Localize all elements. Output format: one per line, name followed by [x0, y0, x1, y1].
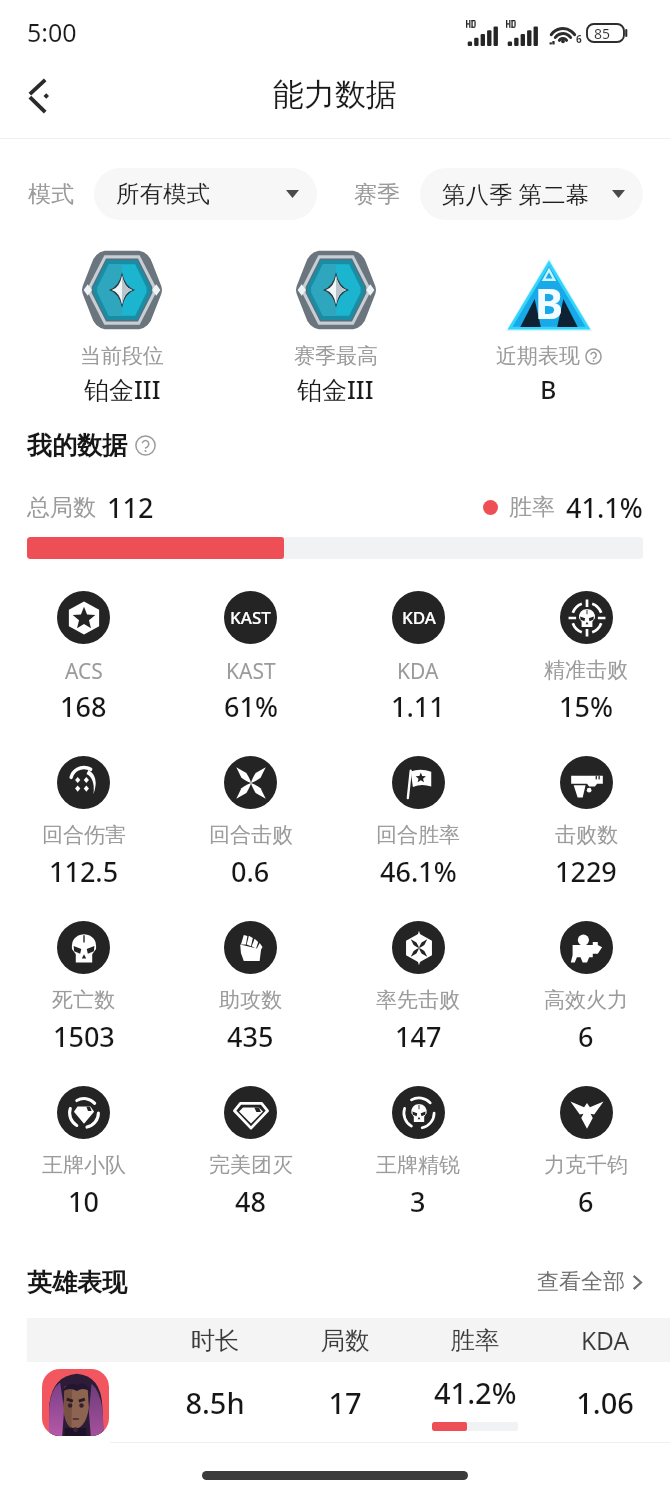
staticText: 6	[578, 1183, 594, 1220]
button[interactable]: 助攻数	[167, 921, 334, 1086]
button[interactable]: Back	[12, 67, 70, 125]
staticText: 112	[107, 489, 154, 526]
button[interactable]: 王牌精锐	[334, 1086, 502, 1251]
staticText: 局数	[280, 1325, 410, 1356]
staticText: 能力数据	[273, 75, 397, 114]
button[interactable]: KAST	[167, 591, 334, 756]
staticText: 10	[68, 1183, 99, 1220]
button[interactable]: KDA	[334, 591, 502, 756]
button[interactable]: 回合伤害	[0, 756, 167, 921]
staticText: 112.5	[49, 853, 119, 890]
button[interactable]: 高效火力	[502, 921, 670, 1086]
staticText: 铂金III	[84, 372, 161, 406]
staticText: 41.2%	[434, 1373, 517, 1412]
staticText: 铂金III	[297, 372, 374, 406]
staticText: 6	[576, 32, 582, 46]
button[interactable]: 精准击败	[502, 591, 670, 756]
staticText: 胜率	[509, 493, 555, 522]
button[interactable]: 回合胜率	[334, 756, 502, 921]
staticText: B	[540, 372, 557, 406]
button[interactable]: 回合击败	[167, 756, 334, 921]
staticText: 我的数据	[27, 430, 127, 461]
staticText: 61%	[224, 688, 278, 725]
staticText: 完美团灭	[209, 1152, 293, 1178]
staticText: 胜率	[410, 1325, 540, 1356]
staticText: KDA	[397, 657, 439, 686]
staticText: 3	[410, 1183, 426, 1220]
staticText: 回合伤害	[42, 822, 126, 848]
staticText: KAST	[230, 606, 271, 629]
staticText: 435	[227, 1018, 274, 1055]
staticText: 所有模式	[116, 179, 210, 209]
button[interactable]: 击败数	[502, 756, 670, 921]
staticText: 46.1%	[380, 853, 457, 890]
button[interactable]: 8.5h	[0, 1362, 670, 1442]
button[interactable]: 力克千钧	[502, 1086, 670, 1251]
staticText: 模式	[28, 180, 74, 209]
staticText: 6	[578, 1018, 594, 1055]
staticText: 时长	[150, 1325, 280, 1356]
staticText: 高效火力	[544, 987, 628, 1013]
staticText: 1.11	[391, 688, 445, 725]
staticText: KDA	[540, 1324, 670, 1357]
staticText: 击败数	[555, 822, 618, 848]
button[interactable]: ACS	[0, 591, 167, 756]
button[interactable]: 死亡数	[0, 921, 167, 1086]
button[interactable]: 第八季 第二幕	[420, 168, 643, 220]
button[interactable]: 当前段位	[15, 236, 229, 408]
staticText: 1.06	[540, 1383, 670, 1422]
staticText: 1229	[555, 853, 617, 890]
staticText: 率先击败	[376, 987, 460, 1013]
staticText: 助攻数	[219, 987, 282, 1013]
staticText: 当前段位	[80, 343, 164, 369]
staticText: 168	[60, 688, 107, 725]
staticText: 17	[280, 1383, 410, 1422]
staticText: 1503	[53, 1018, 115, 1055]
staticText: 5:00	[27, 15, 77, 49]
staticText: 查看全部	[537, 1268, 625, 1296]
staticText: 回合胜率	[376, 822, 460, 848]
staticText: 死亡数	[52, 987, 115, 1013]
button[interactable]: 查看全部	[537, 1268, 643, 1296]
staticText: 15%	[559, 688, 613, 725]
button[interactable]: 王牌小队	[0, 1086, 167, 1251]
staticText: 147	[395, 1018, 442, 1055]
staticText: 王牌精锐	[376, 1152, 460, 1178]
staticText: 力克千钧	[544, 1152, 628, 1178]
staticText: KDA	[402, 606, 436, 629]
staticText: 41.1%	[566, 489, 643, 526]
button[interactable]: 完美团灭	[167, 1086, 334, 1251]
staticText: 近期表现	[496, 343, 580, 369]
staticText: 第八季 第二幕	[442, 178, 590, 210]
staticText: 总局数	[27, 493, 96, 522]
staticText: 85	[594, 24, 611, 42]
staticText: 回合击败	[209, 822, 293, 848]
button[interactable]: 所有模式	[94, 168, 317, 220]
button[interactable]: 率先击败	[334, 921, 502, 1086]
staticText: 精准击败	[544, 657, 628, 683]
staticText: 8.5h	[150, 1383, 280, 1422]
staticText: 王牌小队	[42, 1152, 126, 1178]
staticText: ACS	[65, 657, 103, 686]
button[interactable]: 赛季最高	[229, 236, 442, 408]
staticText: B	[535, 274, 563, 331]
staticText: 英雄表现	[27, 1267, 127, 1298]
staticText: 赛季最高	[294, 343, 378, 369]
button[interactable]: B	[442, 236, 655, 408]
staticText: KAST	[226, 657, 276, 686]
staticText: 48	[235, 1183, 266, 1220]
staticText: 赛季	[354, 180, 400, 209]
staticText: 0.6	[231, 853, 270, 890]
